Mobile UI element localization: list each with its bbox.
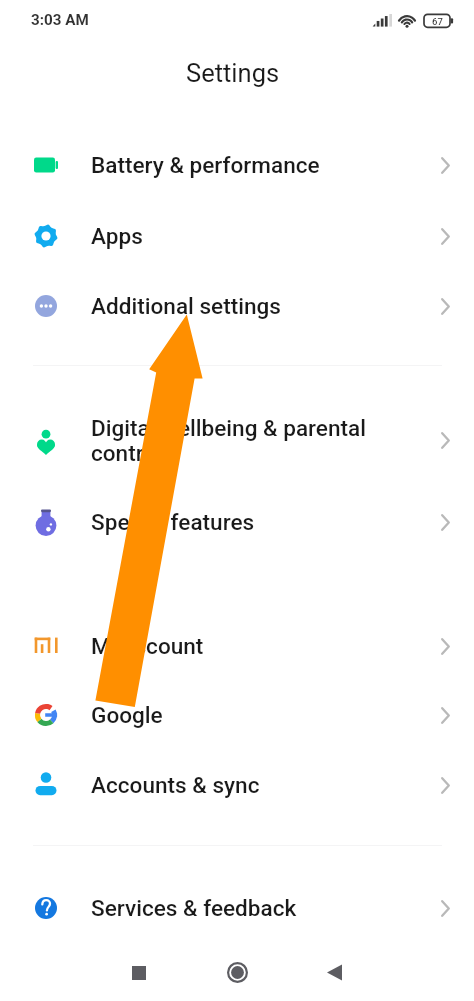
staticText: Mi account bbox=[91, 633, 204, 659]
button[interactable]: Mi account bbox=[0, 611, 474, 681]
staticText: Special features bbox=[91, 509, 255, 535]
button[interactable]: Back bbox=[304, 943, 364, 1001]
staticText: Accounts & sync bbox=[91, 772, 260, 798]
staticText: Settings bbox=[186, 58, 280, 88]
staticText: Services & feedback bbox=[91, 895, 297, 921]
button[interactable]: Battery & performance bbox=[0, 130, 474, 200]
staticText: Apps bbox=[91, 223, 143, 249]
button[interactable]: Services & feedback bbox=[0, 873, 474, 943]
button[interactable]: Special features bbox=[0, 487, 474, 557]
button[interactable]: Accounts & sync bbox=[0, 750, 474, 820]
button[interactable]: Additional settings bbox=[0, 271, 474, 341]
staticText: Additional settings bbox=[91, 293, 281, 319]
staticText: 67 bbox=[432, 16, 443, 27]
staticText: Battery & performance bbox=[91, 152, 320, 178]
button[interactable]: Digital wellbeing & parental controls bbox=[0, 393, 474, 488]
staticText: 3:03 AM bbox=[31, 11, 89, 29]
button[interactable]: Home bbox=[207, 943, 267, 1001]
staticText: Digital wellbeing & parental controls bbox=[91, 415, 366, 466]
staticText: Google bbox=[91, 702, 163, 728]
button[interactable]: Google bbox=[0, 680, 474, 750]
button[interactable]: Recents bbox=[109, 943, 169, 1001]
button[interactable]: Apps bbox=[0, 201, 474, 271]
